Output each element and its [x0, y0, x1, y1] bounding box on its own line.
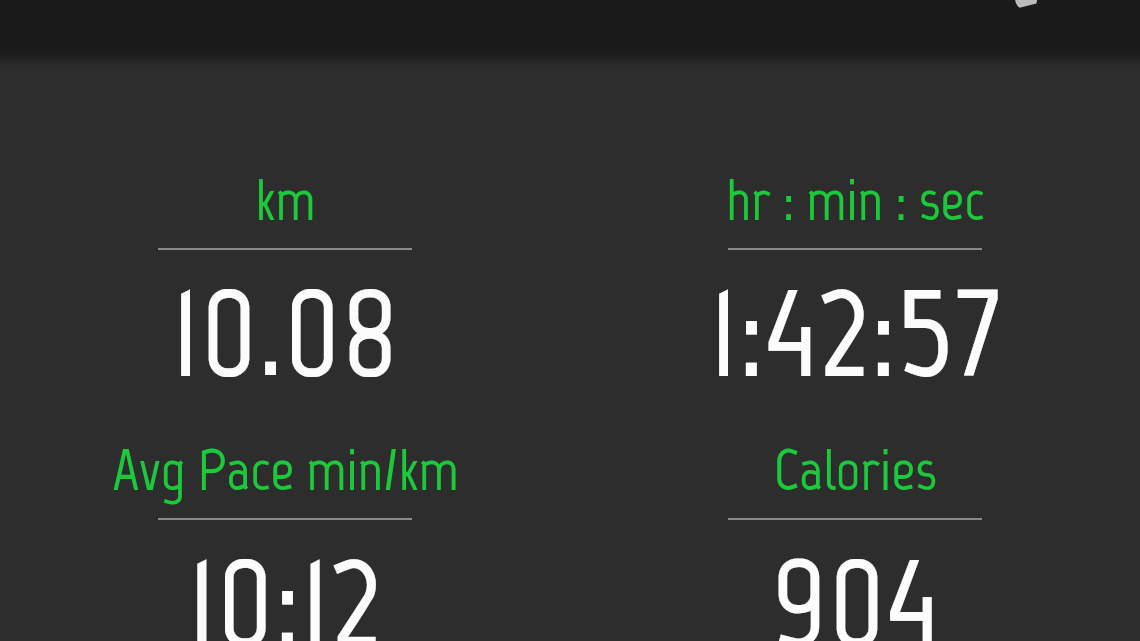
staticText: 904 [771, 520, 939, 641]
staticText: 1:42:57 [709, 250, 1002, 411]
staticText: 10.08 [171, 250, 399, 411]
button[interactable] [0, 120, 570, 382]
staticText: km [255, 164, 316, 235]
staticText: Avg Pace min/km [112, 434, 459, 505]
staticText: Calories [773, 434, 937, 505]
button[interactable] [0, 390, 570, 641]
button[interactable] [570, 390, 1140, 641]
other: Notification [1014, 0, 1040, 10]
staticText: 10:12 [187, 520, 383, 641]
staticText: hr : min : sec [726, 164, 985, 235]
button[interactable] [570, 120, 1140, 382]
